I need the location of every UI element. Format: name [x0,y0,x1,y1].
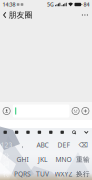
button[interactable]: WXYZ [53,167,74,180]
button[interactable]: ⌫ [74,138,92,152]
button[interactable]: Voice input [3,107,10,115]
staticText: DEF [57,141,69,149]
button[interactable]: Back [0,8,33,22]
button[interactable]: Translate [49,131,52,134]
button[interactable]: More [78,10,92,20]
staticText: 5G [47,1,54,8]
button[interactable]: TUV [32,167,53,180]
staticText: WXYZ [54,170,72,178]
button[interactable]: Emoji [72,107,79,115]
staticText: 换行 [76,170,90,178]
button[interactable]: DEF [53,138,74,152]
button[interactable]: Clipboard [38,131,41,134]
staticText: 符 [3,170,10,178]
staticText: 分词 [3,152,10,167]
staticText: 123 [0,141,12,149]
button[interactable]: 换行 [74,167,92,180]
button[interactable]: 123 [0,138,13,152]
button[interactable]: Hide keyboard [84,131,88,134]
staticText: 朋友圈 [9,10,33,20]
staticText: 14:38 [2,1,15,8]
button[interactable]: PQRS [13,167,32,180]
button[interactable]: Input method [3,131,7,134]
staticText: ， [19,141,26,149]
button[interactable]: ABC [32,138,53,152]
staticText: GHI [16,155,28,164]
button[interactable]: JKL [32,152,53,167]
button[interactable]: MNO [53,152,74,167]
button[interactable]: Sticker [15,131,18,134]
button[interactable]: Search [72,130,76,134]
button[interactable]: ， [13,138,32,152]
staticText: 84 [83,1,89,8]
button[interactable]: GHI [13,152,32,167]
staticText: JKL [38,155,47,164]
button[interactable]: 分词 [0,152,13,167]
staticText: PQRS [14,170,31,178]
button[interactable]: Skin [60,131,64,134]
button[interactable]: 符 [0,167,13,180]
button[interactable]: Voice [26,131,30,134]
staticText: TUV [36,170,49,178]
staticText: ABC [36,141,48,149]
staticText: 重输 [76,155,90,164]
button[interactable]: More options [82,107,89,115]
staticText: ⌫ [78,141,87,149]
staticText: MNO [55,155,71,164]
button[interactable]: 重输 [74,152,92,167]
